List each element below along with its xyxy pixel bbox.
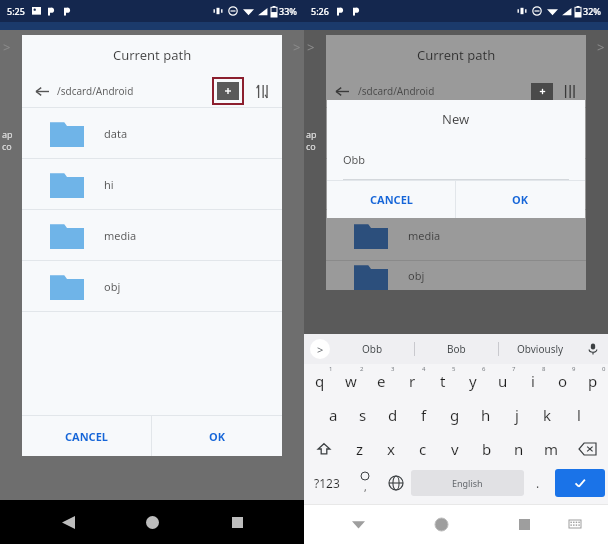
button[interactable]: English (411, 470, 524, 496)
button[interactable]: Voice input (582, 338, 604, 360)
button[interactable]: hi (326, 159, 586, 209)
button[interactable]: data (326, 108, 586, 158)
staticText: c (419, 439, 427, 459)
button[interactable]: . (524, 466, 552, 500)
staticText: 6 (482, 365, 486, 373)
button[interactable]: y (458, 364, 488, 398)
button[interactable]: k (532, 398, 563, 432)
staticText: /sdcard/Android (57, 84, 134, 98)
button[interactable]: Recents (509, 509, 539, 539)
button[interactable]: s (348, 398, 378, 432)
button[interactable]: Sort (252, 81, 272, 101)
staticText: media (104, 228, 137, 243)
button[interactable]: Enter (555, 469, 605, 497)
staticText: New (442, 110, 470, 128)
button[interactable]: a (318, 398, 348, 432)
staticText: . (536, 475, 540, 491)
button[interactable]: j (501, 398, 532, 432)
staticText: co (2, 140, 12, 152)
button[interactable]: r (397, 364, 428, 398)
button[interactable]: CANCEL (22, 416, 151, 456)
button[interactable]: Hide keyboard (343, 509, 373, 539)
button[interactable]: p (578, 364, 608, 398)
staticText: t (440, 371, 446, 391)
button[interactable]: x (375, 432, 407, 466)
button[interactable]: g (439, 398, 470, 432)
button[interactable]: w (335, 364, 366, 398)
button[interactable]: i (518, 364, 548, 398)
button[interactable]: Recents (220, 505, 254, 539)
button[interactable]: OK (456, 181, 585, 218)
staticText: b (482, 439, 492, 459)
button[interactable]: data (22, 108, 282, 158)
button[interactable]: f (408, 398, 439, 432)
staticText: /sdcard/Android (358, 84, 435, 98)
button[interactable]: media (326, 210, 586, 260)
button[interactable]: Obviously (499, 334, 582, 364)
staticText: p (588, 371, 598, 391)
button[interactable]: Bob (415, 334, 498, 364)
staticText: w (345, 371, 357, 391)
button[interactable]: CANCEL (327, 181, 455, 218)
button[interactable]: m (535, 432, 567, 466)
staticText: k (543, 405, 552, 425)
button[interactable]: New folder (217, 82, 239, 100)
staticText: q (315, 371, 325, 391)
button[interactable]: h (470, 398, 501, 432)
button[interactable]: e (366, 364, 397, 398)
staticText: co (306, 140, 316, 152)
button[interactable]: Expand (310, 339, 330, 359)
staticText: 5 (452, 365, 456, 373)
staticText: 2 (360, 365, 364, 373)
button[interactable]: ?123 (304, 466, 349, 500)
button[interactable]: Backspace (567, 432, 608, 466)
button[interactable]: Home (135, 505, 169, 539)
button[interactable]: Shift (304, 432, 344, 466)
staticText: CANCEL (370, 192, 413, 207)
button[interactable]: Emoji (349, 466, 380, 500)
button[interactable]: v (439, 432, 471, 466)
button[interactable]: Home (426, 509, 456, 539)
button[interactable]: obj (22, 261, 282, 311)
button[interactable]: Switch keyboard (562, 511, 588, 537)
button[interactable]: Back (32, 81, 52, 101)
staticText: obj (104, 279, 121, 294)
staticText: l (577, 405, 581, 425)
staticText: Obviously (517, 342, 564, 356)
button[interactable]: u (488, 364, 518, 398)
staticText: hi (408, 177, 418, 192)
staticText: > (317, 342, 324, 357)
button[interactable]: Obb (330, 334, 414, 364)
button[interactable]: hi (22, 159, 282, 209)
button[interactable]: n (503, 432, 535, 466)
staticText: OK (512, 192, 529, 207)
button[interactable]: c (407, 432, 439, 466)
button[interactable]: obj (326, 261, 586, 290)
button[interactable]: media (22, 210, 282, 260)
button[interactable]: Back (51, 505, 85, 539)
staticText: j (515, 405, 519, 425)
staticText: > (293, 38, 301, 56)
button[interactable]: d (378, 398, 408, 432)
staticText: n (514, 439, 524, 459)
staticText: 33% (279, 5, 297, 17)
staticText: obj (408, 268, 425, 283)
button[interactable]: OK (152, 416, 282, 456)
staticText: 8 (542, 365, 546, 373)
button[interactable]: l (563, 398, 594, 432)
button[interactable]: o (548, 364, 578, 398)
staticText: 4 (422, 365, 426, 373)
staticText: 1 (329, 365, 333, 373)
staticText: h (481, 405, 491, 425)
button[interactable]: t (428, 364, 458, 398)
staticText: media (408, 228, 441, 243)
staticText: u (498, 371, 508, 391)
staticText: o (558, 371, 568, 391)
staticText: Obb (343, 152, 366, 167)
staticText: 5:26 (311, 5, 329, 17)
button[interactable]: q (304, 364, 335, 398)
button[interactable]: z (344, 432, 375, 466)
button[interactable]: b (471, 432, 503, 466)
button[interactable]: Change language (380, 466, 411, 500)
staticText: OK (209, 429, 226, 444)
